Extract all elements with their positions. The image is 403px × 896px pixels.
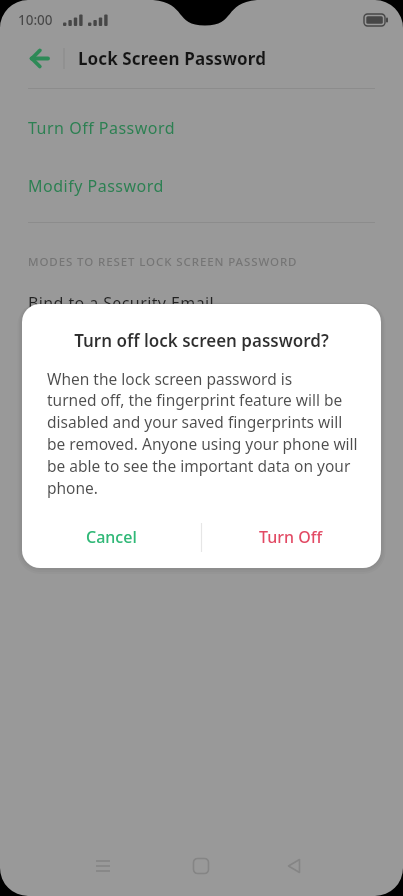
button[interactable] — [177, 842, 225, 890]
button[interactable] — [20, 42, 56, 76]
staticText: Turn off lock screen password? — [22, 329, 381, 352]
staticText: MODES TO RESET LOCK SCREEN PASSWORD — [28, 254, 298, 270]
staticText: Cancel — [86, 526, 137, 548]
staticText: 10:00 — [18, 11, 53, 29]
button[interactable]: Turn Off — [231, 515, 351, 559]
staticText: Turn Off — [259, 526, 323, 548]
button[interactable]: Cancel — [51, 515, 171, 559]
staticText: Modify Password — [28, 175, 164, 197]
staticText: When the lock screen password is turned … — [47, 368, 358, 499]
staticText: Lock Screen Password — [78, 47, 267, 70]
staticText: Bind to a Security Email — [28, 292, 215, 314]
staticText: Turn Off Password — [28, 117, 176, 139]
button[interactable]: Turn Off Password — [0, 107, 403, 147]
button[interactable]: Modify Password — [0, 165, 403, 205]
button[interactable] — [79, 842, 127, 890]
